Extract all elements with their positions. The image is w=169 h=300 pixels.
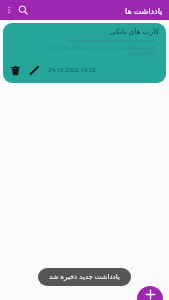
button[interactable]: یادداشت جدید ذخیره شد [38, 268, 131, 286]
staticText: یادداشت جدید ذخیره شد [49, 272, 120, 282]
staticText: 24.10.2022 19:32 [48, 66, 96, 74]
button[interactable]: More options [2, 3, 16, 17]
staticText: یادداشت ها [125, 5, 163, 16]
button[interactable]: کارت های بانکی [3, 23, 166, 83]
button[interactable]: Edit note [26, 62, 42, 78]
button[interactable]: Add note [137, 286, 163, 300]
staticText: کارت های بانکی [109, 26, 159, 36]
button[interactable]: Search [16, 3, 30, 17]
button[interactable]: Delete note [7, 62, 23, 78]
